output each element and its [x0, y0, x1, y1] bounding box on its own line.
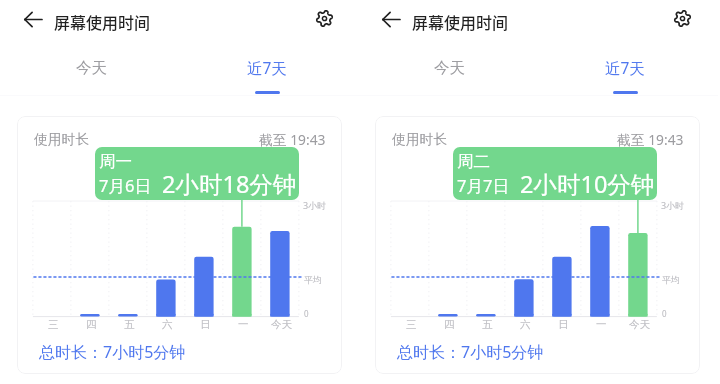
- staticText: 7月7日: [457, 174, 509, 197]
- staticText: 使用时长: [34, 131, 90, 148]
- staticText: 今天: [271, 318, 292, 331]
- staticText: 3小时: [661, 199, 685, 211]
- button[interactable]: [17, 116, 342, 374]
- button[interactable]: Back: [376, 4, 406, 34]
- button[interactable]: 近7天: [583, 48, 669, 94]
- button[interactable]: 今天: [48, 48, 134, 88]
- staticText: 四: [86, 318, 97, 331]
- staticText: 平均: [662, 274, 680, 285]
- button[interactable]: Settings: [667, 3, 697, 33]
- staticText: 四: [444, 318, 455, 331]
- staticText: 一: [596, 318, 607, 331]
- button[interactable]: 一: [223, 201, 261, 332]
- staticText: 六: [520, 318, 531, 331]
- staticText: 三: [48, 318, 59, 331]
- button[interactable]: 日: [185, 201, 223, 332]
- button[interactable]: 今天: [406, 48, 492, 88]
- staticText: 三: [406, 318, 417, 331]
- staticText: 3小时: [303, 199, 327, 211]
- staticText: 屏幕使用时间: [54, 10, 151, 33]
- button[interactable]: 三: [391, 201, 429, 332]
- staticText: 屏幕使用时间: [412, 10, 509, 33]
- button[interactable]: 六: [147, 201, 185, 332]
- staticText: 平均: [304, 274, 322, 285]
- staticText: 总时长：7小时5分钟: [39, 341, 186, 363]
- staticText: 近7天: [247, 57, 287, 78]
- staticText: 近7天: [605, 57, 645, 78]
- staticText: 周二: [457, 151, 490, 172]
- button[interactable]: Back: [18, 4, 48, 34]
- staticText: 日: [558, 318, 569, 331]
- staticText: 2小时10分钟: [520, 168, 655, 200]
- button[interactable]: 近7天: [225, 48, 311, 94]
- staticText: 7月6日: [99, 174, 151, 197]
- staticText: 周一: [99, 151, 132, 172]
- button[interactable]: 一: [581, 201, 619, 332]
- button[interactable]: 六: [505, 201, 543, 332]
- staticText: 截至 19:43: [617, 130, 684, 149]
- staticText: 使用时长: [392, 131, 448, 148]
- button[interactable]: [375, 116, 700, 374]
- staticText: 六: [162, 318, 173, 331]
- button[interactable]: 今天: [261, 201, 299, 332]
- button[interactable]: 四: [71, 201, 109, 332]
- staticText: 0: [662, 308, 667, 319]
- staticText: 今天: [434, 58, 465, 78]
- button[interactable]: 今天: [619, 201, 657, 332]
- button[interactable]: 五: [109, 201, 147, 332]
- staticText: 今天: [76, 58, 107, 78]
- button[interactable]: 三: [33, 201, 71, 332]
- staticText: 五: [124, 318, 135, 331]
- staticText: 0: [304, 308, 309, 319]
- staticText: 日: [200, 318, 211, 331]
- staticText: 五: [482, 318, 493, 331]
- staticText: 总时长：7小时5分钟: [397, 341, 544, 363]
- staticText: 一: [238, 318, 249, 331]
- button[interactable]: 五: [467, 201, 505, 332]
- staticText: 截至 19:43: [259, 130, 326, 149]
- button[interactable]: 四: [429, 201, 467, 332]
- button[interactable]: 日: [543, 201, 581, 332]
- button[interactable]: Settings: [309, 3, 339, 33]
- staticText: 2小时18分钟: [162, 168, 297, 200]
- staticText: 今天: [629, 318, 650, 331]
